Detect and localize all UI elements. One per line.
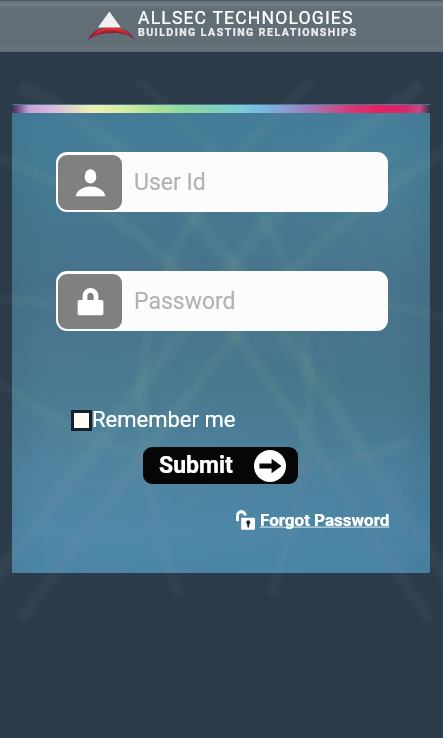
button[interactable]: Submit — [143, 447, 298, 484]
button[interactable]: Forgot Password — [234, 507, 392, 533]
staticText: Forgot Password — [260, 510, 390, 530]
staticText: Remember me — [92, 407, 236, 433]
staticText: Password — [134, 288, 236, 315]
button[interactable]: Password — [56, 271, 388, 331]
staticText: User Id — [134, 169, 206, 196]
staticText: Submit — [159, 452, 233, 479]
staticText: BUILDING LASTING RELATIONSHIPS — [138, 26, 358, 38]
button[interactable]: Remember me — [69, 404, 238, 436]
staticText: ALLSEC TECHNOLOGIES — [138, 8, 354, 29]
other: Submit — [254, 450, 286, 482]
button[interactable]: User Id — [56, 152, 388, 212]
